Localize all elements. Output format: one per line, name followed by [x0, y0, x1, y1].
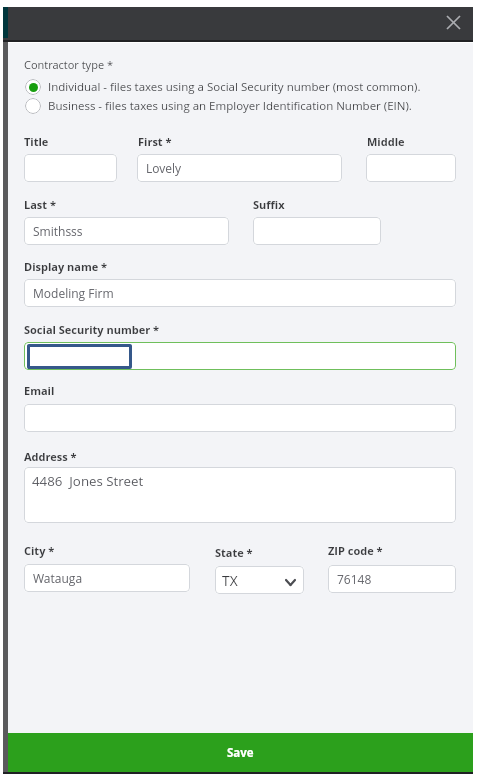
staticText: TX	[222, 571, 238, 590]
staticText: Email	[24, 383, 55, 398]
staticText: Contractor type *	[24, 57, 113, 72]
button[interactable]	[24, 342, 456, 370]
staticText: Lovely	[146, 160, 182, 176]
staticText: Title	[24, 134, 49, 149]
staticText: Individual - files taxes using a Social …	[48, 79, 421, 95]
button[interactable]	[366, 154, 456, 182]
button[interactable]: State	[215, 566, 304, 594]
staticText: ZIP code *	[328, 543, 383, 558]
button[interactable]: Watauga	[24, 564, 190, 592]
button[interactable]	[24, 154, 117, 182]
staticText: Save	[227, 745, 254, 761]
staticText: Modeling Firm	[33, 285, 114, 301]
button[interactable]: Save	[8, 733, 473, 772]
staticText: Suffix	[253, 197, 285, 212]
button[interactable]: Individual - files taxes using a Social …	[25, 78, 456, 95]
button[interactable]	[24, 404, 456, 432]
staticText: Watauga	[33, 570, 83, 586]
staticText: Last *	[24, 197, 56, 212]
staticText: State *	[215, 545, 253, 560]
staticText: Address *	[24, 449, 77, 464]
staticText: Middle	[367, 134, 405, 149]
staticText: 4486 Jones Street	[32, 472, 144, 490]
staticText: Business - files taxes using an Employer…	[48, 98, 412, 114]
button[interactable]: Smithsss	[24, 217, 229, 245]
button[interactable]: Business - files taxes using an Employer…	[25, 97, 456, 114]
button[interactable]: Lovely	[137, 154, 342, 182]
staticText: Smithsss	[33, 223, 83, 239]
staticText: City *	[24, 543, 55, 558]
staticText: Display name *	[24, 259, 108, 274]
button[interactable]: Close	[440, 9, 466, 35]
button[interactable]: 76148	[328, 565, 456, 593]
button[interactable]: 4486 Jones Street	[24, 467, 456, 523]
staticText: Social Security number *	[24, 322, 159, 337]
staticText: First *	[138, 134, 172, 149]
button[interactable]: Modeling Firm	[24, 279, 456, 307]
staticText: 76148	[337, 571, 372, 587]
button[interactable]	[253, 217, 381, 245]
